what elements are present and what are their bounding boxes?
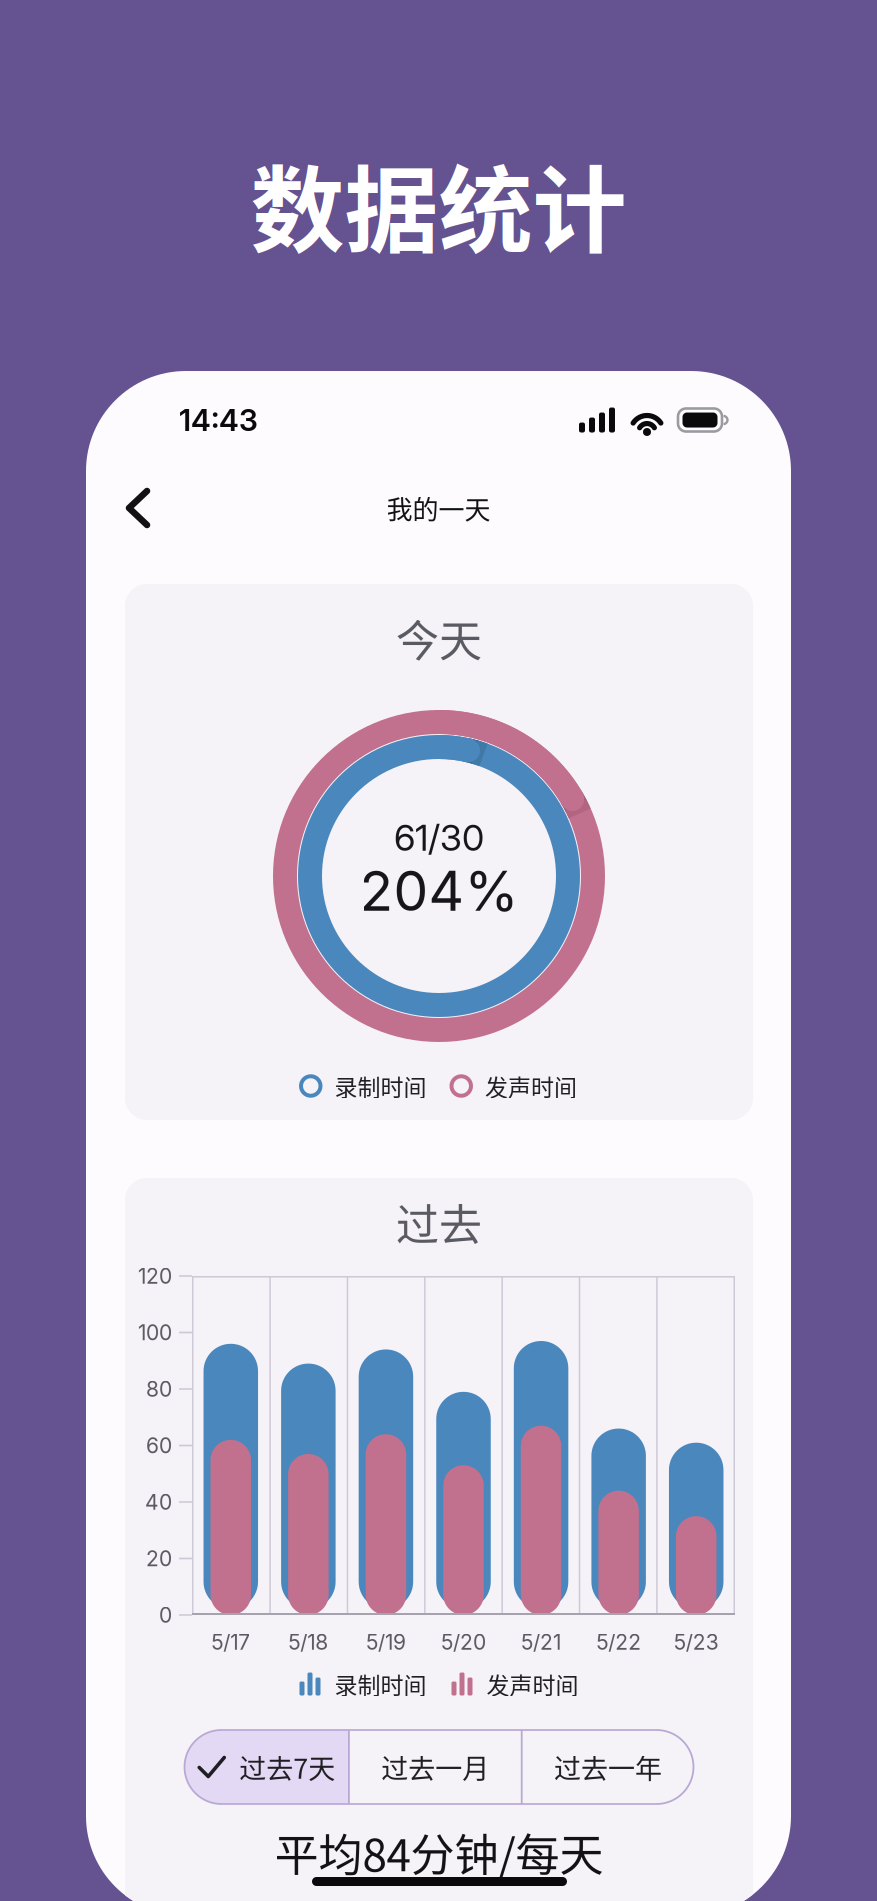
staticText: 60: [146, 1433, 172, 1458]
staticText: 14:43: [179, 402, 258, 438]
staticText: 过去一月: [381, 1747, 489, 1787]
button[interactable]: Back: [109, 476, 167, 540]
staticText: 40: [145, 1489, 172, 1515]
staticText: 过去: [396, 1191, 482, 1253]
staticText: 5/22: [596, 1629, 641, 1655]
staticText: 5/20: [441, 1629, 486, 1655]
staticText: 5/18: [288, 1629, 328, 1655]
staticText: 5/23: [674, 1629, 719, 1655]
staticText: 80: [146, 1376, 172, 1402]
staticText: 发声时间: [486, 1667, 578, 1701]
staticText: 100: [138, 1320, 172, 1345]
staticText: 录制时间: [334, 1069, 426, 1103]
staticText: 过去7天: [239, 1747, 335, 1787]
staticText: 过去一年: [554, 1747, 662, 1787]
staticText: 5/17: [211, 1629, 250, 1655]
staticText: 录制时间: [334, 1667, 426, 1701]
staticText: 5/21: [521, 1629, 561, 1655]
staticText: 数据统计: [250, 136, 626, 272]
staticText: 20: [146, 1546, 172, 1571]
button[interactable]: 过去一月: [350, 1730, 521, 1804]
button[interactable]: 过去7天: [184, 1730, 348, 1804]
staticText: 我的一天: [386, 489, 490, 527]
staticText: 今天: [396, 607, 482, 669]
staticText: 120: [138, 1263, 172, 1289]
staticText: 204%: [359, 857, 518, 924]
staticText: 0: [159, 1602, 172, 1628]
staticText: 61/30: [394, 816, 484, 859]
staticText: 平均84分钟/每天: [274, 1820, 603, 1884]
button[interactable]: 过去一年: [523, 1730, 693, 1804]
staticText: 5/19: [366, 1629, 406, 1655]
staticText: 发声时间: [485, 1069, 577, 1103]
